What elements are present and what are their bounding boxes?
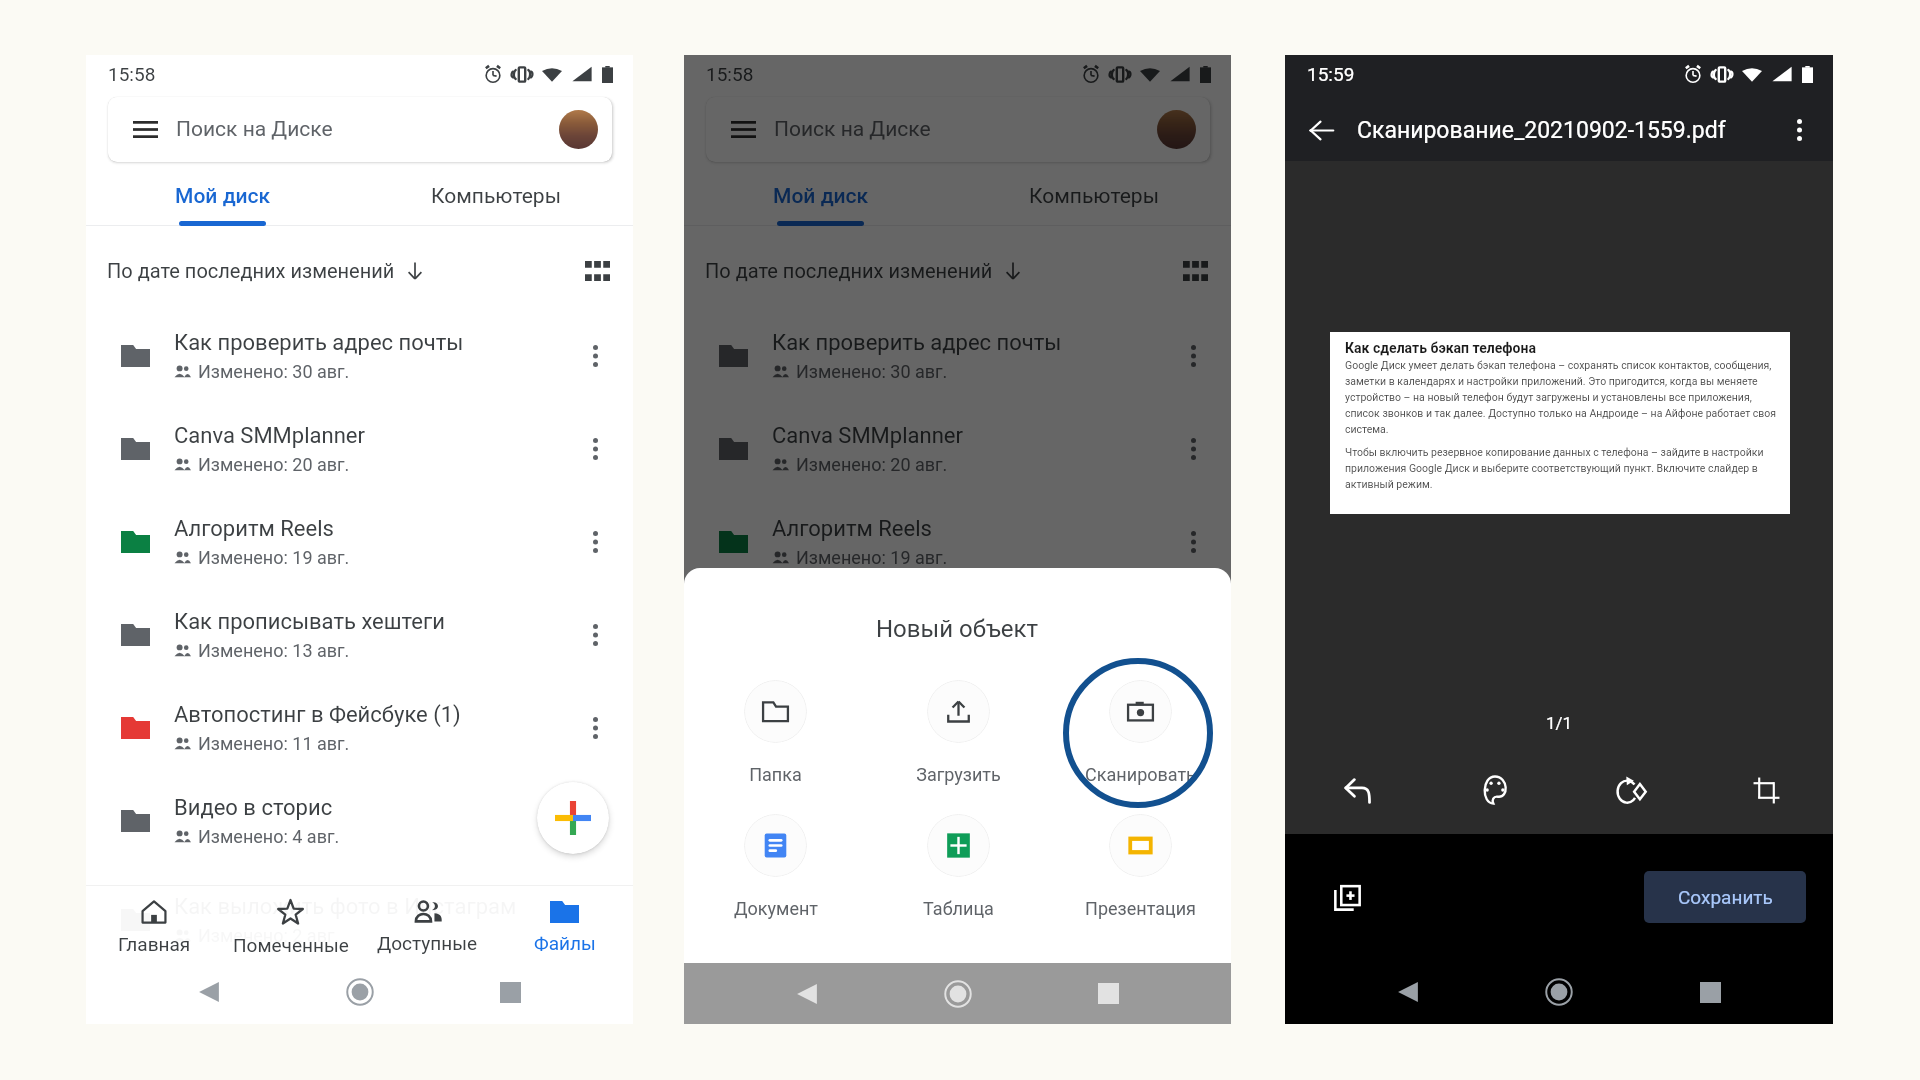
button[interactable]: Grid view	[1175, 251, 1215, 291]
staticText: Изменено: 11 авг.	[198, 733, 350, 754]
staticText: Поиск на Диске	[774, 117, 931, 142]
staticText: Автопостинг в Фейсбуке (1)	[772, 702, 1059, 728]
button[interactable]: Поиск на Диске	[706, 97, 1210, 162]
button[interactable]: Папка	[684, 680, 867, 785]
button[interactable]: Доступные	[359, 885, 496, 960]
staticText: Поиск на Диске	[176, 117, 333, 142]
button[interactable]: More options	[1171, 520, 1215, 564]
staticText: Как проверить адрес почты	[772, 330, 1062, 356]
staticText: Компьютеры	[1029, 184, 1159, 209]
button[interactable]: Сканировать	[1049, 680, 1231, 785]
staticText: Алгоритм Reels	[174, 516, 334, 542]
staticText: Изменено: 20 авг.	[796, 454, 948, 475]
button[interactable]: Как проверить адрес почты	[86, 309, 633, 402]
staticText: Файлы	[534, 932, 596, 954]
button[interactable]: Алгоритм Reels	[684, 495, 1231, 588]
staticText: Доступные	[377, 932, 478, 954]
button[interactable]: More options	[573, 799, 617, 843]
button[interactable]: Create new	[537, 782, 609, 854]
button[interactable]: Crop	[1743, 767, 1789, 813]
button[interactable]: Как прописывать хештеги	[684, 588, 1231, 681]
staticText: Как сделать бэкап телефона	[1345, 340, 1536, 356]
button[interactable]: More options	[1777, 108, 1821, 152]
staticText: Таблица	[923, 898, 994, 919]
button[interactable]: Поиск на Диске	[108, 97, 612, 162]
button[interactable]: Canva SMMplanner	[86, 402, 633, 495]
staticText: Изменено: 13 авг.	[198, 640, 350, 661]
button[interactable]: Grid view	[577, 251, 617, 291]
button[interactable]: Помеченные	[222, 885, 359, 960]
button[interactable]: More options	[573, 613, 617, 657]
button[interactable]: Главная	[86, 885, 222, 960]
staticText: Canva SMMplanner	[772, 423, 963, 449]
button[interactable]: Компьютеры	[359, 167, 633, 226]
staticText: Загрузить	[916, 764, 1001, 785]
button[interactable]: Мой диск	[86, 167, 359, 226]
button[interactable]: Компьютеры	[957, 167, 1231, 226]
staticText: 15:58	[706, 63, 754, 85]
staticText: Чтобы включить резервное копирование дан…	[1345, 446, 1764, 490]
staticText: Сканировать	[1085, 764, 1196, 785]
staticText: Мой диск	[175, 184, 271, 209]
button[interactable]: More options	[1171, 706, 1215, 750]
button[interactable]: Автопостинг в Фейсбуке (1)	[684, 681, 1231, 774]
staticText: Компьютеры	[431, 184, 561, 209]
button[interactable]: Сохранить	[1644, 871, 1806, 923]
button[interactable]: Видео в сторис	[684, 774, 1231, 867]
button[interactable]: More options	[573, 427, 617, 471]
staticText: Новый объект	[876, 615, 1039, 643]
staticText: Google Диск умеет делать бэкап телефона …	[1345, 359, 1777, 435]
staticText: Алгоритм Reels	[772, 516, 932, 542]
staticText: Canva SMMplanner	[174, 423, 365, 449]
button[interactable]: Алгоритм Reels	[86, 495, 633, 588]
button[interactable]: Презентация	[1049, 814, 1231, 919]
staticText: Папка	[749, 764, 802, 785]
button[interactable]: Видео в сторис	[86, 774, 633, 867]
staticText: Как проверить адрес почты	[174, 330, 464, 356]
staticText: Видео в сторис	[174, 795, 333, 821]
button[interactable]: По дате последних изменений	[107, 255, 423, 285]
staticText: Изменено: 4 авг.	[198, 826, 340, 847]
button[interactable]: По дате последних изменений	[705, 255, 1021, 285]
staticText: Как выложить фото в Инстаграм	[174, 894, 517, 920]
staticText: Как прописывать хештеги	[174, 609, 445, 635]
button[interactable]: More options	[573, 334, 617, 378]
button[interactable]: Filter	[1472, 767, 1518, 813]
staticText: Сканирование_20210902-1559.pdf	[1357, 117, 1726, 144]
staticText: Презентация	[1085, 898, 1196, 919]
staticText: Автопостинг в Фейсбуке (1)	[174, 702, 461, 728]
button[interactable]: More options	[573, 706, 617, 750]
button[interactable]: More options	[1171, 427, 1215, 471]
button[interactable]: Back	[1299, 108, 1343, 152]
button[interactable]: Документ	[684, 814, 867, 919]
button[interactable]: Rotate	[1608, 767, 1654, 813]
button[interactable]: Как проверить адрес почты	[684, 309, 1231, 402]
button[interactable]: More options	[1171, 799, 1215, 843]
staticText: Изменено: 19 авг.	[198, 547, 350, 568]
button[interactable]: Таблица	[867, 814, 1049, 919]
staticText: Документ	[734, 898, 818, 919]
button[interactable]: Add page	[1325, 875, 1369, 919]
staticText: Помеченные	[233, 934, 349, 956]
button[interactable]: More options	[1171, 334, 1215, 378]
button[interactable]: More options	[573, 520, 617, 564]
button[interactable]: Файлы	[496, 885, 633, 960]
button[interactable]: Как прописывать хештеги	[86, 588, 633, 681]
staticText: По дате последних изменений	[705, 259, 993, 282]
button[interactable]: Загрузить	[867, 680, 1049, 785]
staticText: Сохранить	[1678, 886, 1773, 908]
staticText: 1/1	[1546, 713, 1573, 733]
staticText: 15:59	[1307, 63, 1355, 85]
button[interactable]: Мой диск	[684, 167, 957, 226]
staticText: По дате последних изменений	[107, 259, 395, 282]
button[interactable]: Canva SMMplanner	[684, 402, 1231, 495]
staticText: Как прописывать хештеги	[772, 609, 1043, 635]
button[interactable]: Автопостинг в Фейсбуке (1)	[86, 681, 633, 774]
staticText: 15:58	[108, 63, 156, 85]
staticText: Мой диск	[773, 184, 869, 209]
button[interactable]: Undo	[1335, 767, 1381, 813]
